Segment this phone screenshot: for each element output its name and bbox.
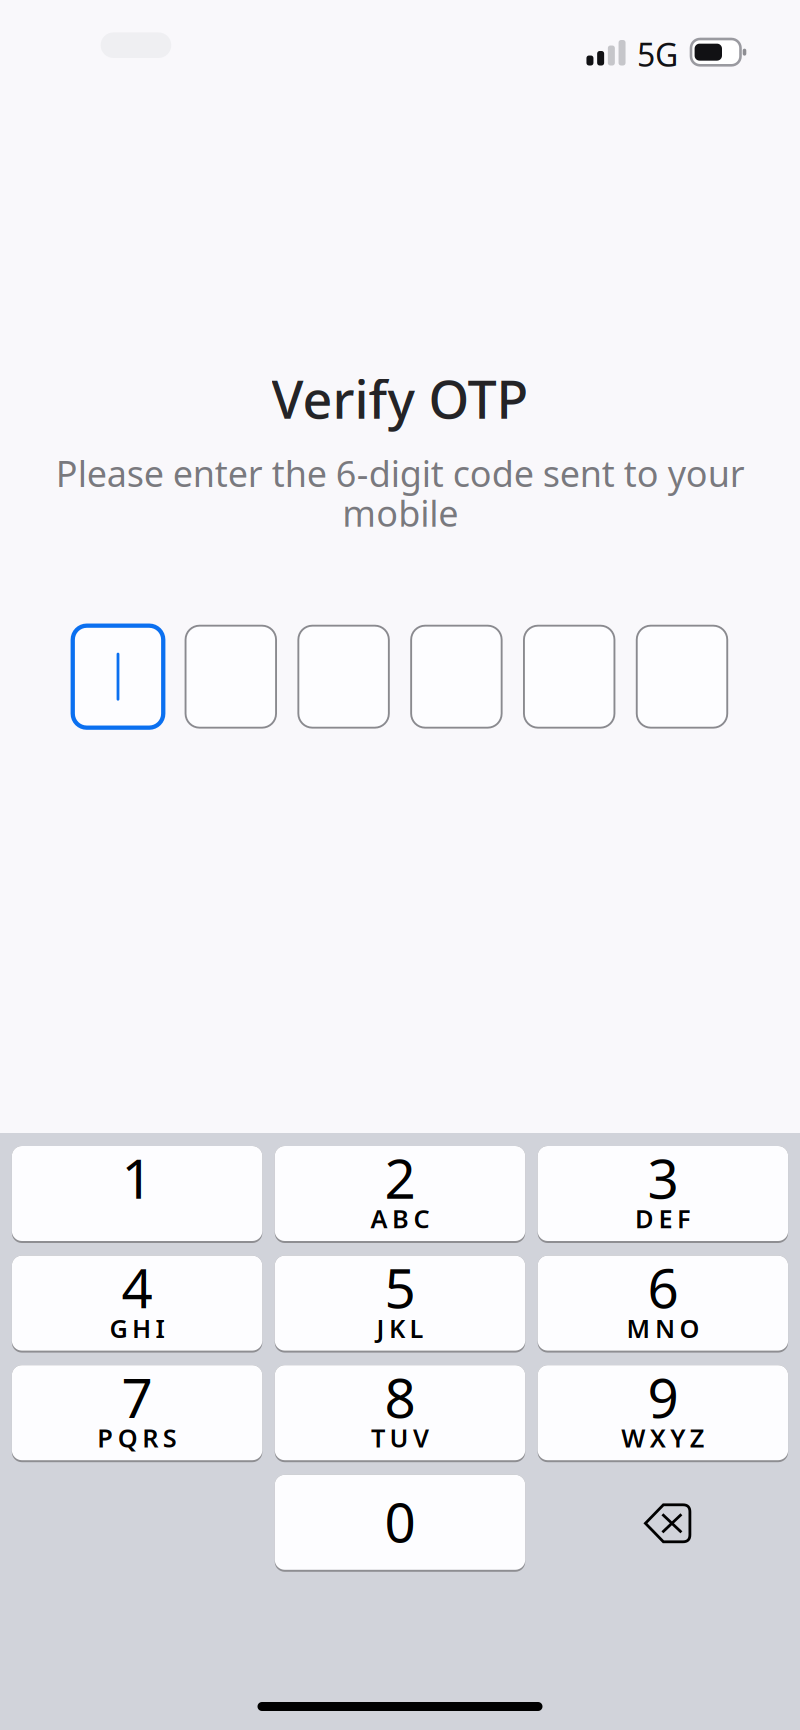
staticText: 5G xyxy=(637,33,678,75)
staticText: MNO xyxy=(626,1311,699,1345)
button[interactable]: Digit field xyxy=(298,626,389,728)
staticText: 0 xyxy=(384,1485,415,1558)
staticText: ABC xyxy=(370,1202,429,1235)
staticText: GHI xyxy=(110,1311,165,1345)
button[interactable]: Delete xyxy=(538,1475,788,1570)
staticText: TUV xyxy=(371,1421,429,1454)
staticText: 1 xyxy=(122,1141,153,1214)
staticText: 3 xyxy=(647,1141,678,1214)
button[interactable]: 6 xyxy=(538,1256,788,1351)
button[interactable]: 9 xyxy=(538,1365,788,1460)
staticText: WXYZ xyxy=(621,1421,705,1454)
staticText: PQRS xyxy=(97,1421,177,1454)
staticText: 6 xyxy=(647,1251,678,1323)
button[interactable]: 3 xyxy=(538,1146,788,1241)
button[interactable]: 1 xyxy=(12,1146,262,1241)
button[interactable]: Digit field xyxy=(73,626,163,728)
staticText: DEF xyxy=(635,1202,691,1235)
button[interactable]: Digit field xyxy=(524,626,614,728)
button[interactable]: 4 xyxy=(12,1256,262,1351)
staticText: 7 xyxy=(122,1360,153,1433)
button[interactable]: 7 xyxy=(12,1365,262,1460)
button[interactable]: Digit field xyxy=(637,626,727,728)
button[interactable]: 0 xyxy=(275,1475,525,1570)
staticText: 2 xyxy=(384,1141,415,1214)
staticText: 5 xyxy=(384,1251,415,1323)
button[interactable]: 5 xyxy=(275,1256,525,1351)
staticText: 9 xyxy=(647,1360,678,1433)
staticText: Verify OTP xyxy=(271,364,528,433)
button[interactable]: Digit field xyxy=(411,626,502,728)
button[interactable]: Digit field xyxy=(186,626,276,728)
staticText: JKL xyxy=(376,1311,423,1345)
staticText: 4 xyxy=(122,1251,153,1323)
staticText: 8 xyxy=(384,1360,415,1433)
button[interactable]: 8 xyxy=(275,1365,525,1460)
button[interactable]: 2 xyxy=(275,1146,525,1241)
staticText: Please enter the 6-digit code sent to yo… xyxy=(55,449,744,537)
